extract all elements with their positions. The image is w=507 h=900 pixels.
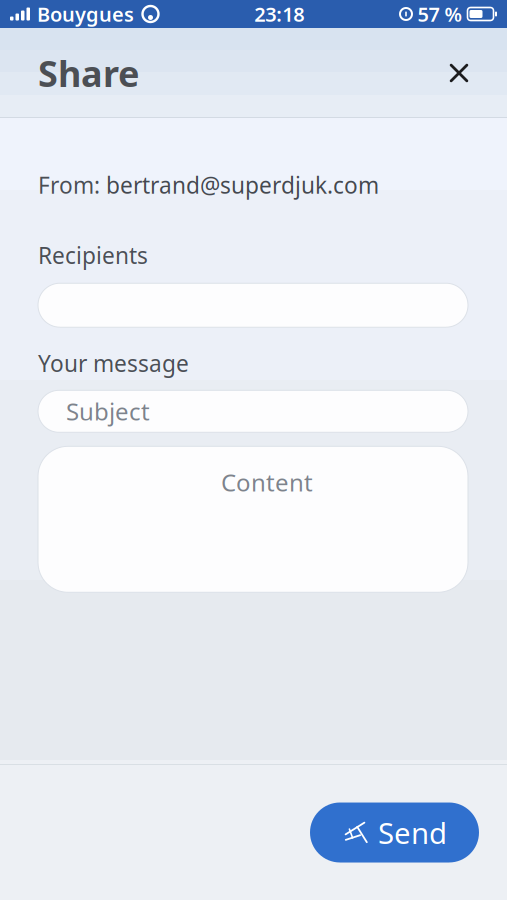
- button[interactable]: Close: [431, 45, 487, 101]
- staticText: From:: [38, 170, 106, 200]
- button[interactable]: Send: [310, 802, 479, 862]
- staticText: 57 %: [417, 1, 462, 27]
- staticText: Content: [221, 466, 313, 498]
- button[interactable]: Subject: [38, 390, 468, 432]
- staticText: Bouygues: [37, 1, 134, 27]
- button[interactable]: [38, 283, 468, 327]
- staticText: Your message: [38, 348, 189, 378]
- staticText: Share: [38, 49, 139, 97]
- staticText: Subject: [66, 395, 150, 427]
- staticText: 23:18: [254, 1, 304, 27]
- button[interactable]: Content: [38, 446, 468, 592]
- staticText: bertrand@superdjuk.com: [106, 170, 379, 200]
- staticText: Recipients: [38, 240, 148, 270]
- staticText: Send: [378, 813, 447, 852]
